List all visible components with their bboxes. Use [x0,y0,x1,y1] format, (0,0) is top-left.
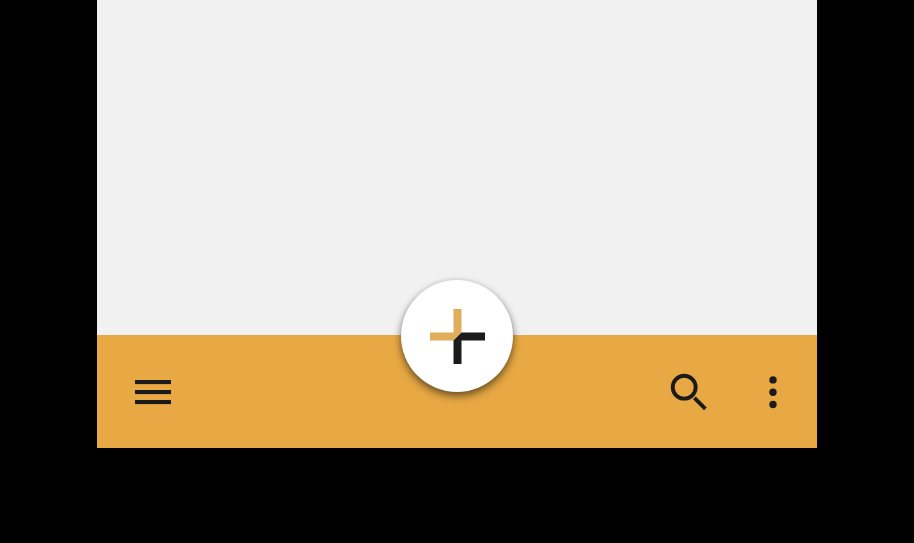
button[interactable]: Add [401,280,513,392]
button[interactable]: Search [661,364,717,420]
button[interactable]: More options [745,364,801,420]
button[interactable]: Open navigation drawer [125,364,181,420]
